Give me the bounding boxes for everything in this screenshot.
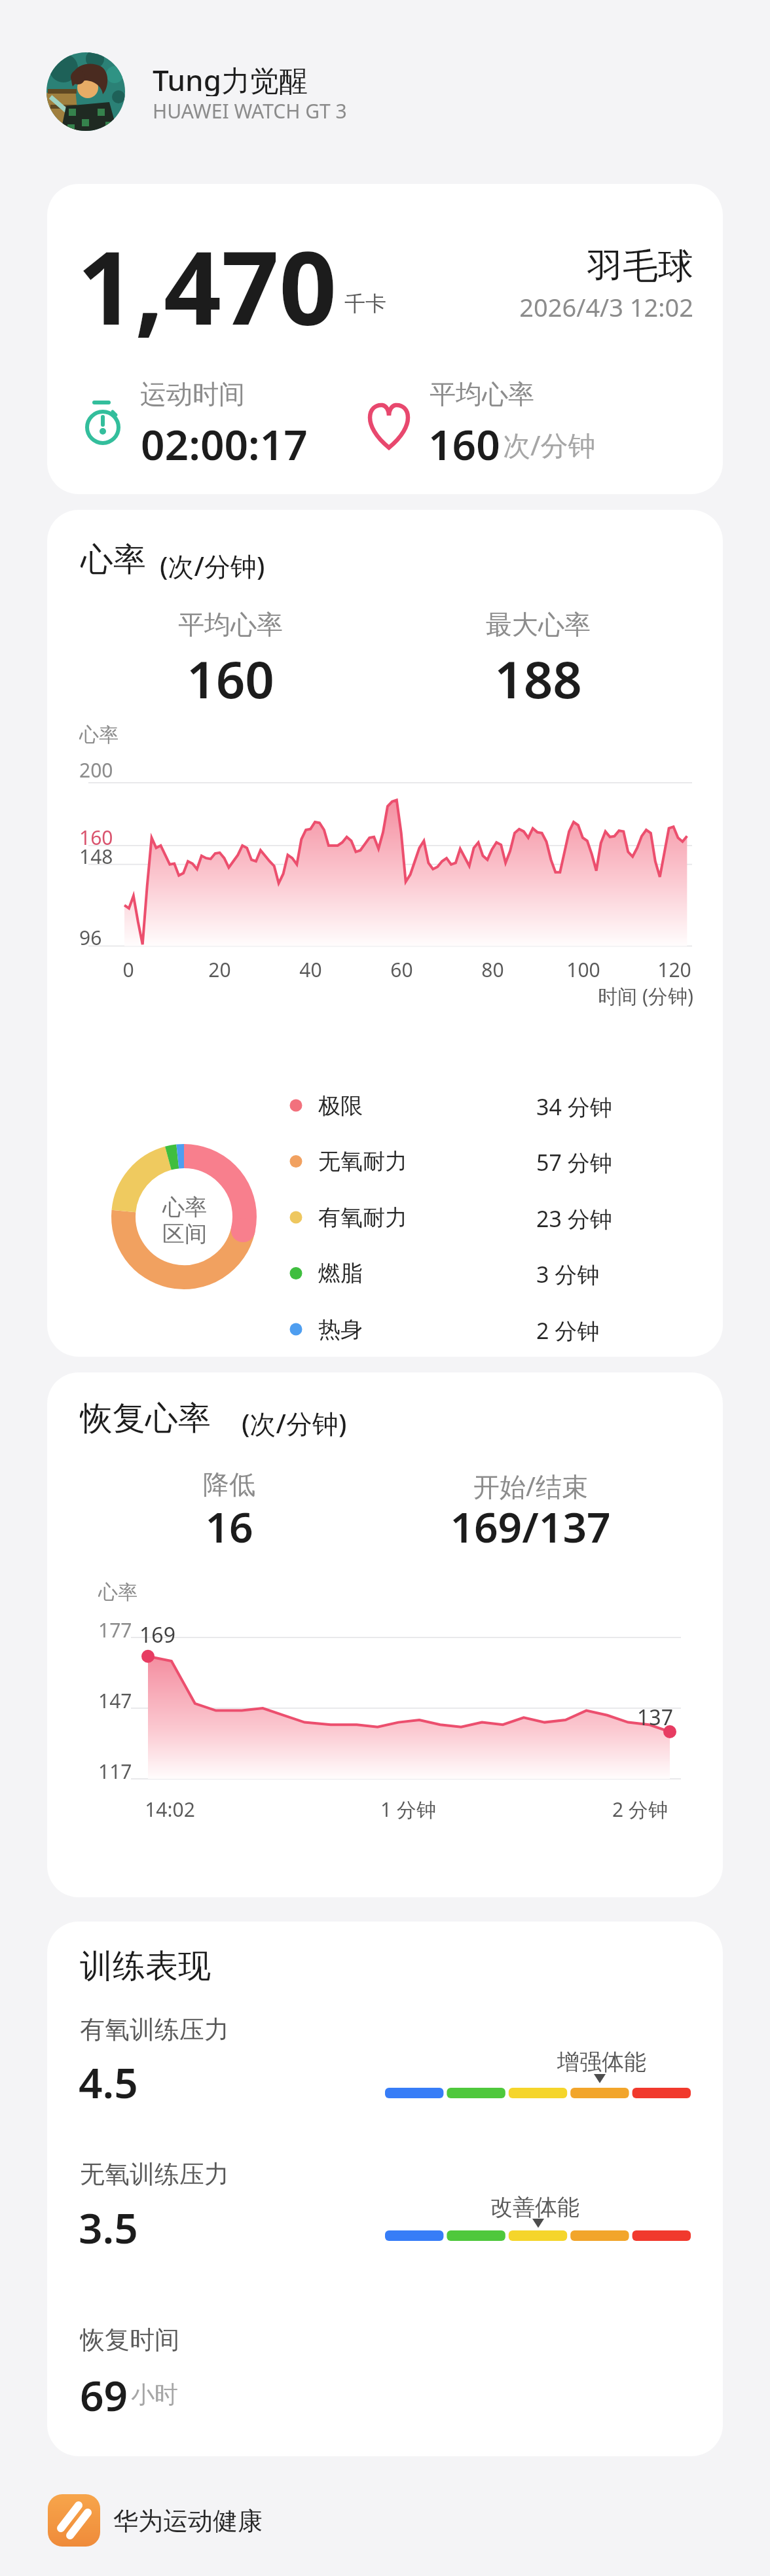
staticText: 小时 (131, 2380, 178, 2409)
staticText: 0 (122, 956, 134, 980)
staticText: 2026/4/3 12:02 (519, 290, 693, 321)
staticText: 降低 (203, 1468, 255, 1501)
staticText: Tung力觉醒 (153, 60, 308, 96)
staticText: 运动时间 (140, 378, 245, 410)
staticText: 60 (390, 956, 413, 980)
staticText: 14:02 (145, 1796, 195, 1820)
staticText: 3 分钟 (536, 1259, 600, 1287)
staticText: 16 (205, 1498, 253, 1550)
staticText: 34 分钟 (536, 1092, 612, 1119)
staticText: 增强体能 (557, 2048, 646, 2075)
staticText: 心率 区间 (162, 1193, 207, 1247)
staticText: 4.5 (79, 2054, 138, 2106)
staticText: 160 (428, 416, 500, 468)
staticText: 1,470 (77, 217, 337, 342)
staticText: 开始/结束 (473, 1468, 588, 1501)
staticText: 3.5 (79, 2199, 138, 2251)
staticText: 无氧训练压力 (80, 2158, 229, 2189)
staticText: 23 分钟 (536, 1204, 612, 1231)
staticText: HUAWEI WATCH GT 3 (153, 98, 347, 122)
staticText: 117 (98, 1758, 132, 1782)
staticText: 169/137 (450, 1498, 611, 1550)
staticText: 羽毛球 (587, 244, 693, 288)
staticText: 160 (187, 644, 274, 707)
staticText: 57 分钟 (536, 1147, 612, 1175)
staticText: 最大心率 (486, 608, 591, 641)
staticText: 100 (566, 956, 600, 980)
staticText: 1 分钟 (380, 1796, 436, 1820)
staticText: 169 (139, 1620, 175, 1647)
staticText: 69 (80, 2367, 128, 2419)
staticText: 心率 (98, 1580, 137, 1604)
staticText: 137 (637, 1703, 673, 1729)
staticText: 极限 (318, 1092, 363, 1119)
staticText: 有氧训练压力 (80, 2014, 229, 2045)
staticText: 改善体能 (490, 2193, 579, 2221)
staticText: 恢复心率 (80, 1398, 211, 1439)
staticText: 188 (494, 644, 582, 707)
staticText: 平均心率 (178, 608, 283, 641)
staticText: 心率 (81, 539, 146, 580)
staticText: 160 (79, 824, 113, 848)
staticText: 147 (98, 1687, 132, 1711)
staticText: 200 (79, 757, 113, 781)
staticText: 40 (299, 956, 322, 980)
staticText: 次/分钟 (503, 426, 596, 460)
staticText: 训练表现 (80, 1946, 211, 1986)
staticText: (次/分钟) (242, 1405, 347, 1438)
staticText: 2 分钟 (612, 1796, 668, 1820)
button[interactable] (47, 52, 414, 131)
staticText: 20 (208, 956, 231, 980)
staticText: 无氧耐力 (318, 1147, 407, 1175)
staticText: 96 (79, 924, 102, 948)
staticText: 燃脂 (318, 1259, 363, 1287)
staticText: 心率 (79, 723, 119, 747)
staticText: 177 (98, 1617, 132, 1641)
staticText: 恢复时间 (80, 2324, 179, 2355)
staticText: 2 分钟 (536, 1315, 600, 1343)
staticText: 千卡 (344, 291, 386, 317)
staticText: 148 (79, 843, 113, 867)
staticText: 有氧耐力 (318, 1204, 407, 1231)
staticText: 120 (657, 956, 691, 980)
button[interactable] (47, 2494, 263, 2547)
staticText: 80 (481, 956, 504, 980)
staticText: (次/分钟) (160, 548, 265, 581)
staticText: 02:00:17 (141, 416, 308, 468)
staticText: 华为运动健康 (113, 2505, 263, 2536)
staticText: 热身 (318, 1315, 363, 1343)
staticText: 时间 (分钟) (598, 982, 693, 1007)
staticText: 平均心率 (430, 378, 534, 410)
